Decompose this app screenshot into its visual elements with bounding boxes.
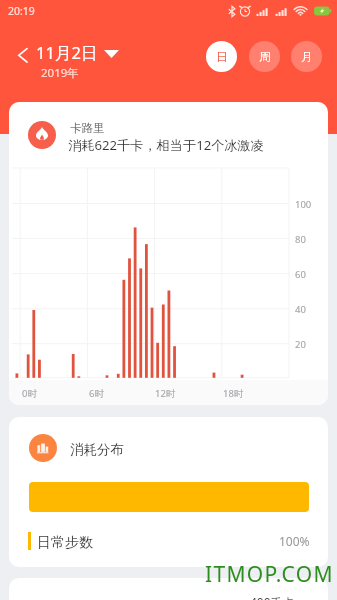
staticText: 消耗622千卡，相当于12个冰激凌 xyxy=(68,136,264,154)
staticText: 18时 xyxy=(223,387,244,400)
staticText: 日常步数 xyxy=(37,534,93,552)
staticText: 400千卡 xyxy=(250,594,295,600)
button[interactable]: 日常步数 xyxy=(9,532,328,550)
staticText: 卡路里 xyxy=(70,121,105,135)
staticText: 月 xyxy=(301,50,313,64)
staticText: 80 xyxy=(295,233,306,246)
staticText: 60 xyxy=(295,268,306,281)
button[interactable]: 周 xyxy=(249,41,280,72)
staticText: 100 xyxy=(295,198,312,211)
staticText: ITMOP.COM xyxy=(205,560,334,589)
staticText: 0时 xyxy=(22,387,37,400)
staticText: 消耗分布 xyxy=(70,441,124,458)
button[interactable]: 月 xyxy=(291,41,322,72)
staticText: 20:19 xyxy=(8,4,35,18)
staticText: 20 xyxy=(295,338,306,351)
button[interactable]: 卡路里 xyxy=(9,102,328,405)
button[interactable]: 400千卡 xyxy=(9,578,328,600)
staticText: 6时 xyxy=(89,387,104,400)
staticText: 周 xyxy=(259,50,271,64)
staticText: 12时 xyxy=(155,387,176,400)
button[interactable]: Back xyxy=(10,40,38,68)
staticText: 100% xyxy=(279,533,310,549)
staticText: 11月2日 xyxy=(36,41,98,64)
staticText: 40 xyxy=(295,303,306,316)
button[interactable]: 消耗分布 xyxy=(9,417,328,567)
staticText: 日 xyxy=(216,50,228,64)
button[interactable]: 日 xyxy=(206,41,237,72)
button[interactable]: 11月2日 xyxy=(34,40,124,64)
staticText: 2019年 xyxy=(41,65,79,81)
